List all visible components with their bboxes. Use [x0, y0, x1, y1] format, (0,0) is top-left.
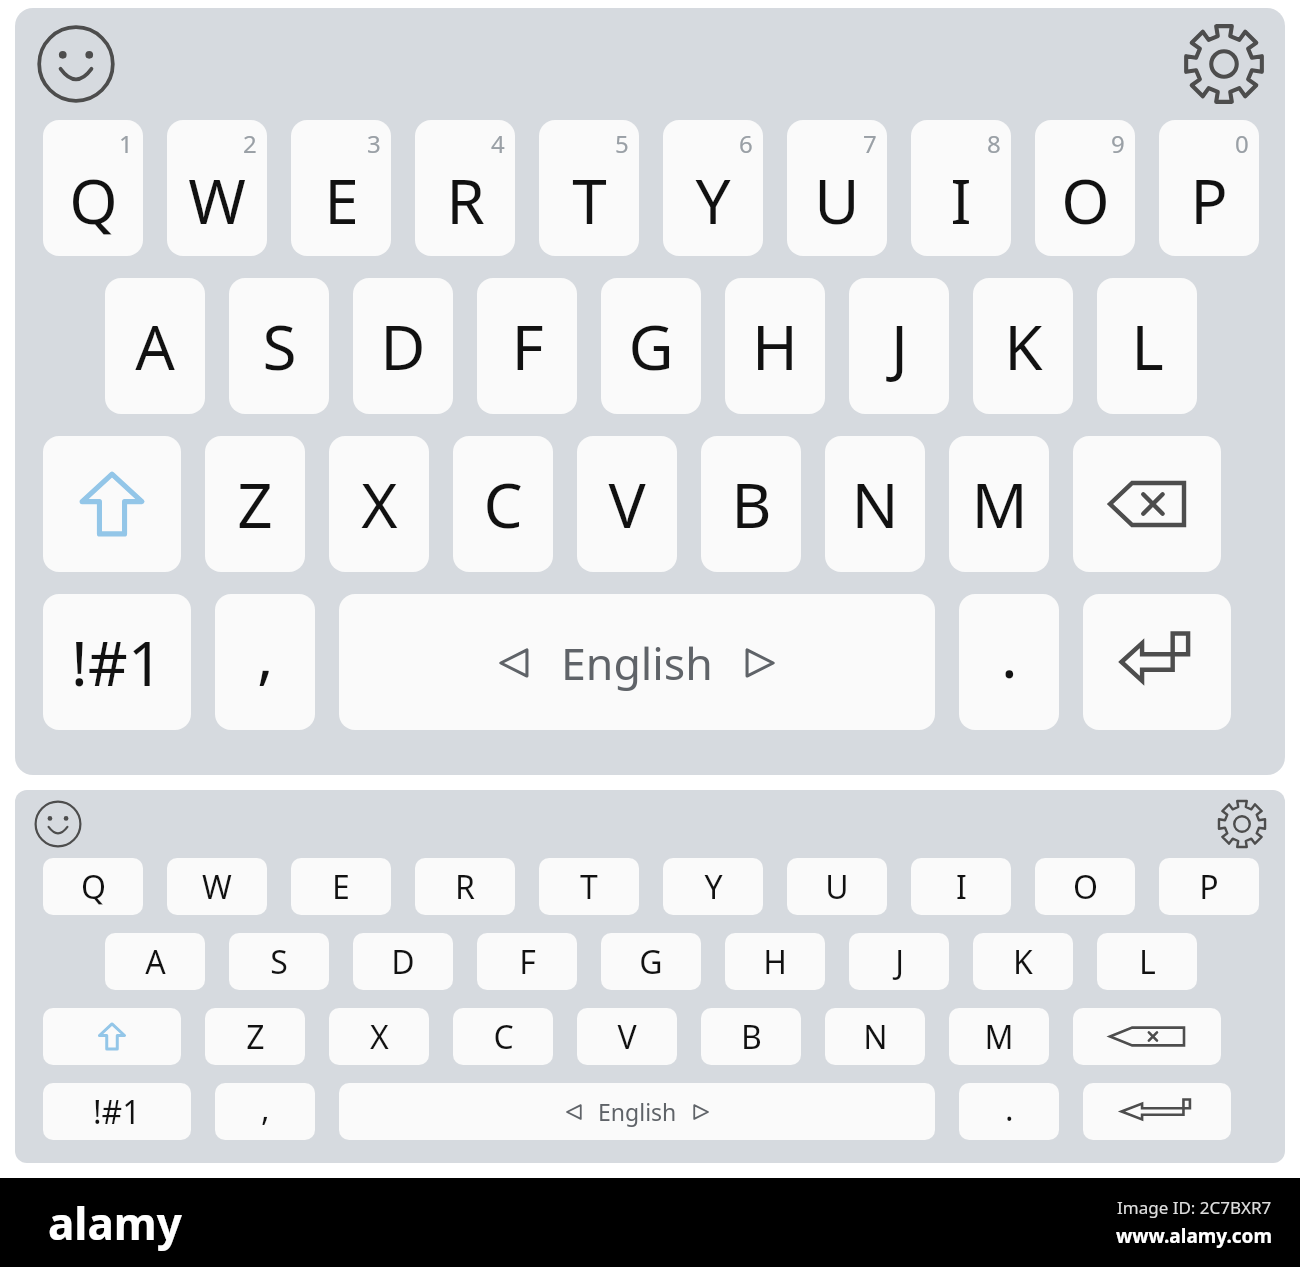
- button[interactable]: U: [787, 120, 887, 256]
- button[interactable]: L: [1097, 278, 1197, 414]
- button[interactable]: W: [167, 120, 267, 256]
- button[interactable]: F: [477, 933, 577, 990]
- button[interactable]: S: [229, 933, 329, 990]
- button[interactable]: I: [911, 120, 1011, 256]
- staticText: J: [891, 304, 908, 388]
- button[interactable]: J: [849, 933, 949, 990]
- button[interactable]: E: [291, 120, 391, 256]
- button[interactable]: F: [477, 278, 577, 414]
- button[interactable]: M: [949, 436, 1049, 572]
- staticText: Y: [704, 865, 723, 909]
- button[interactable]: Settings: [1214, 796, 1270, 852]
- button[interactable]: K: [973, 278, 1073, 414]
- staticText: W: [188, 158, 246, 242]
- button[interactable]: Emoji: [30, 796, 86, 852]
- button[interactable]: Backspace: [1073, 1008, 1221, 1065]
- staticText: 4: [491, 127, 505, 160]
- staticText: H: [752, 304, 798, 388]
- button[interactable]: C: [453, 1008, 553, 1065]
- button[interactable]: A: [105, 278, 205, 414]
- button[interactable]: Comma: [215, 1083, 315, 1140]
- button[interactable]: Symbols: [43, 1083, 191, 1140]
- staticText: Y: [695, 158, 731, 242]
- staticText: 8: [987, 127, 1001, 160]
- button[interactable]: G: [601, 933, 701, 990]
- staticText: G: [628, 304, 674, 388]
- staticText: U: [825, 865, 849, 909]
- staticText: !#1: [71, 620, 164, 704]
- staticText: 9: [1111, 127, 1125, 160]
- staticText: 5: [615, 127, 629, 160]
- button[interactable]: L: [1097, 933, 1197, 990]
- button[interactable]: R: [415, 120, 515, 256]
- staticText: B: [731, 462, 772, 546]
- staticText: P: [1199, 865, 1219, 909]
- button[interactable]: E: [291, 858, 391, 915]
- button[interactable]: Shift: [43, 1008, 181, 1065]
- button[interactable]: V: [577, 1008, 677, 1065]
- button[interactable]: Z: [205, 1008, 305, 1065]
- button[interactable]: T: [539, 858, 639, 915]
- button[interactable]: C: [453, 436, 553, 572]
- button[interactable]: Symbols: [43, 594, 191, 730]
- button[interactable]: Y: [663, 858, 763, 915]
- button[interactable]: Period: [959, 1083, 1059, 1140]
- button[interactable]: B: [701, 1008, 801, 1065]
- button[interactable]: English: [339, 594, 935, 730]
- button[interactable]: Emoji: [30, 18, 122, 110]
- staticText: O: [1073, 865, 1098, 909]
- button[interactable]: Comma: [215, 594, 315, 730]
- button[interactable]: H: [725, 278, 825, 414]
- staticText: D: [391, 940, 415, 984]
- button[interactable]: K: [973, 933, 1073, 990]
- staticText: 7: [863, 127, 877, 160]
- button[interactable]: X: [329, 1008, 429, 1065]
- button[interactable]: Backspace: [1073, 436, 1221, 572]
- button[interactable]: G: [601, 278, 701, 414]
- button[interactable]: I: [911, 858, 1011, 915]
- button[interactable]: English: [339, 1083, 935, 1140]
- staticText: R: [446, 158, 485, 242]
- staticText: .: [1005, 1087, 1014, 1131]
- button[interactable]: O: [1035, 120, 1135, 256]
- button[interactable]: Q: [43, 120, 143, 256]
- staticText: F: [519, 940, 536, 984]
- staticText: U: [814, 158, 860, 242]
- button[interactable]: S: [229, 278, 329, 414]
- button[interactable]: Enter: [1083, 1083, 1231, 1140]
- button[interactable]: B: [701, 436, 801, 572]
- staticText: A: [135, 304, 175, 388]
- button[interactable]: J: [849, 278, 949, 414]
- button[interactable]: Settings: [1178, 18, 1270, 110]
- staticText: C: [493, 1015, 514, 1059]
- button[interactable]: O: [1035, 858, 1135, 915]
- button[interactable]: Y: [663, 120, 763, 256]
- button[interactable]: Q: [43, 858, 143, 915]
- button[interactable]: A: [105, 933, 205, 990]
- button[interactable]: Period: [959, 594, 1059, 730]
- button[interactable]: N: [825, 436, 925, 572]
- button[interactable]: X: [329, 436, 429, 572]
- staticText: 2: [243, 127, 257, 160]
- button[interactable]: D: [353, 933, 453, 990]
- button[interactable]: T: [539, 120, 639, 256]
- button[interactable]: W: [167, 858, 267, 915]
- button[interactable]: V: [577, 436, 677, 572]
- button[interactable]: R: [415, 858, 515, 915]
- button[interactable]: H: [725, 933, 825, 990]
- staticText: T: [580, 865, 598, 909]
- button[interactable]: U: [787, 858, 887, 915]
- button[interactable]: N: [825, 1008, 925, 1065]
- button[interactable]: P: [1159, 120, 1259, 256]
- staticText: D: [380, 304, 426, 388]
- staticText: S: [270, 940, 288, 984]
- staticText: P: [1190, 158, 1228, 242]
- button[interactable]: Shift: [43, 436, 181, 572]
- button[interactable]: Z: [205, 436, 305, 572]
- button[interactable]: D: [353, 278, 453, 414]
- button[interactable]: P: [1159, 858, 1259, 915]
- button[interactable]: Enter: [1083, 594, 1231, 730]
- staticText: T: [572, 158, 607, 242]
- staticText: ,: [257, 612, 274, 696]
- button[interactable]: M: [949, 1008, 1049, 1065]
